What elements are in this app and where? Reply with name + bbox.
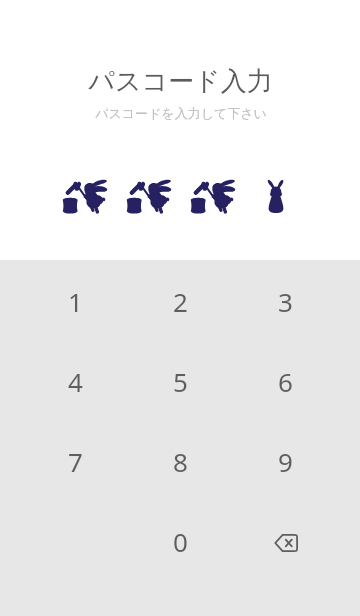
- staticText: パスコード入力: [88, 65, 273, 98]
- button[interactable]: Backspace: [233, 501, 338, 581]
- button[interactable]: 0: [128, 501, 233, 581]
- staticText: 6: [278, 364, 293, 399]
- button[interactable]: 8: [128, 421, 233, 501]
- staticText: パスコードを入力して下さい: [95, 105, 267, 121]
- staticText: 4: [68, 364, 83, 399]
- other: Backspace: [266, 521, 306, 561]
- staticText: 1: [68, 284, 83, 319]
- staticText: 8: [173, 444, 188, 479]
- button[interactable]: 2: [128, 261, 233, 341]
- staticText: 3: [278, 284, 293, 319]
- staticText: 0: [173, 524, 188, 559]
- button[interactable]: 1: [22, 261, 128, 341]
- staticText: 5: [173, 364, 188, 399]
- button[interactable]: 5: [128, 341, 233, 421]
- button[interactable]: 3: [233, 261, 338, 341]
- button[interactable]: 7: [22, 421, 128, 501]
- staticText: 7: [68, 444, 83, 479]
- staticText: 9: [278, 444, 293, 479]
- button[interactable]: 9: [233, 421, 338, 501]
- button[interactable]: 6: [233, 341, 338, 421]
- button[interactable]: 4: [22, 341, 128, 421]
- staticText: 2: [173, 284, 188, 319]
